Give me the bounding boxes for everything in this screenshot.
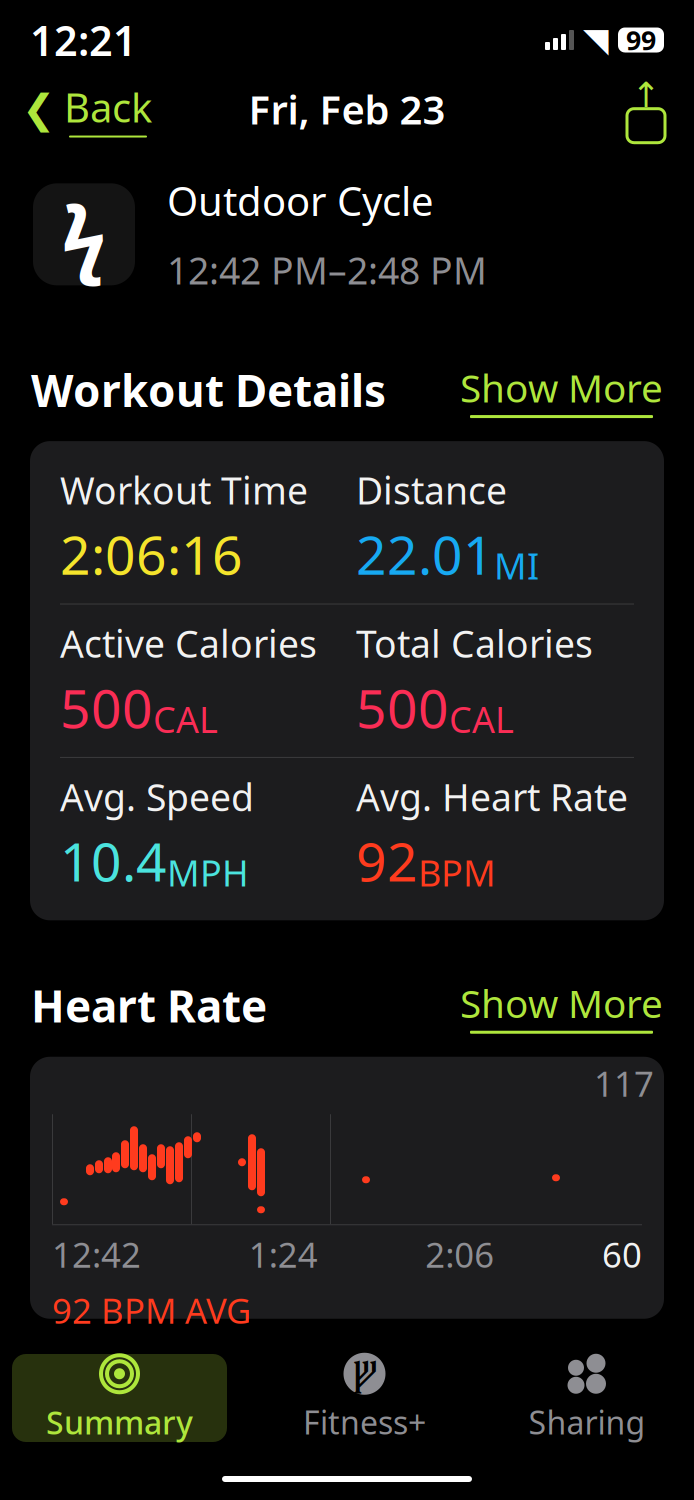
staticText: 92	[356, 825, 418, 896]
staticText: 99	[626, 22, 656, 58]
staticText: 500	[356, 672, 449, 743]
staticText: ↑	[631, 75, 660, 115]
staticText: 117	[594, 1060, 654, 1106]
staticText: 92 BPM AVG	[52, 1287, 251, 1333]
staticText: ϟ	[61, 179, 107, 289]
button[interactable]: Sharing	[502, 1354, 672, 1442]
staticText: Active Calories	[60, 618, 317, 668]
staticText: Summary	[46, 1401, 193, 1443]
staticText: Show More	[460, 977, 663, 1029]
staticText: 12:42 PM–2:48 PM	[167, 245, 487, 295]
staticText: MPH	[167, 848, 249, 896]
staticText: Total Calories	[356, 618, 593, 668]
staticText: Outdoor Cycle	[167, 174, 434, 227]
staticText: Avg. Heart Rate	[356, 772, 628, 821]
staticText: BPM	[418, 848, 496, 896]
staticText: Heart Rate	[31, 976, 267, 1035]
staticText: 12:42	[52, 1231, 141, 1277]
staticText: Avg. Speed	[60, 772, 254, 821]
staticText: Fitness+	[303, 1401, 426, 1443]
staticText: Workout Time	[60, 465, 308, 515]
button[interactable]: ᚠ	[279, 1354, 449, 1442]
button[interactable]: Summary	[12, 1354, 227, 1442]
staticText: Fri, Feb 23	[248, 82, 445, 135]
staticText: CAL	[153, 695, 218, 743]
staticText: ❮	[22, 86, 56, 132]
staticText: 1:24	[249, 1231, 318, 1277]
staticText: Show More	[460, 362, 663, 413]
staticText: 12:21	[30, 13, 137, 67]
staticText: ◥	[583, 21, 609, 59]
staticText: MI	[494, 542, 539, 589]
staticText: 2:06:16	[60, 519, 243, 589]
staticText: 2:06	[425, 1231, 494, 1277]
staticText: 60	[602, 1231, 642, 1277]
staticText: 500	[60, 672, 153, 743]
button[interactable]: ❮	[22, 80, 152, 137]
staticText: ᚠ	[353, 1352, 376, 1396]
staticText: Distance	[356, 465, 507, 515]
staticText: 22.01	[356, 519, 494, 589]
button[interactable]: Show More	[460, 977, 663, 1034]
staticText: CAL	[449, 695, 514, 743]
staticText: 10.4	[60, 825, 167, 896]
button[interactable]: Share	[620, 83, 672, 135]
staticText: Sharing	[528, 1401, 645, 1443]
button[interactable]: Show More	[460, 362, 663, 418]
staticText: Workout Details	[31, 361, 386, 419]
staticText: Back	[64, 80, 152, 133]
